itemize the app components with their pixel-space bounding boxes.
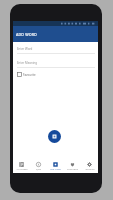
staticText: Enter Word xyxy=(17,47,33,51)
staticText: Favourite xyxy=(23,73,36,77)
button[interactable]: ADD WORD xyxy=(47,160,64,173)
staticText: QUIZ xyxy=(36,168,41,171)
button[interactable]: SETTINGS xyxy=(81,160,98,173)
button[interactable]: QUIZ xyxy=(30,160,47,173)
button[interactable]: Favourite xyxy=(17,72,36,77)
staticText: SETTINGS xyxy=(85,168,95,171)
staticText: ALL WORDS xyxy=(16,168,28,171)
staticText: ADD WORD xyxy=(50,168,61,171)
staticText: Enter Meaning xyxy=(17,61,37,65)
button[interactable]: Save xyxy=(48,130,61,143)
button[interactable]: FAVOURITE xyxy=(64,160,81,173)
staticText: FAVOURITE xyxy=(67,168,78,171)
button[interactable]: ALL WORDS xyxy=(13,160,30,173)
staticText: ADD WORD xyxy=(16,32,37,37)
